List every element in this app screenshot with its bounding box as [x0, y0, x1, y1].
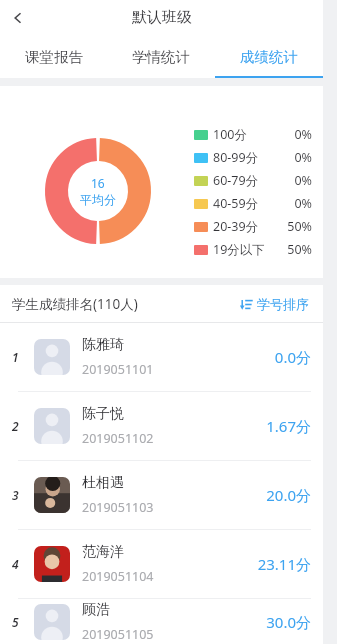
staticText: 4 — [12, 556, 19, 572]
staticText: 50% — [287, 241, 312, 258]
staticText: 学情统计 — [132, 48, 190, 66]
staticText: 16 — [91, 175, 105, 191]
staticText: 0.0分 — [274, 347, 311, 367]
staticText: 60-79分 — [213, 172, 259, 189]
staticText: 2019051104 — [82, 568, 154, 585]
staticText: 2019051105 — [82, 626, 154, 643]
staticText: 0% — [294, 172, 312, 189]
staticText: 成绩统计 — [240, 48, 298, 66]
button[interactable]: 4 — [0, 530, 323, 598]
button[interactable]: 成绩统计 — [215, 35, 323, 78]
staticText: 2 — [12, 418, 19, 434]
button[interactable]: 1 — [0, 323, 323, 391]
staticText: 30.0分 — [266, 612, 311, 632]
staticText: 19分以下 — [213, 241, 265, 258]
staticText: 默认班级 — [132, 8, 192, 27]
staticText: 20-39分 — [213, 218, 259, 235]
staticText: 0% — [294, 126, 312, 143]
staticText: 学生成绩排名(110人) — [12, 295, 138, 313]
staticText: 1 — [12, 349, 19, 365]
staticText: 0% — [294, 195, 312, 212]
staticText: 学号排序 — [257, 296, 309, 312]
staticText: 陈雅琦 — [82, 336, 124, 354]
staticText: 范海洋 — [82, 543, 124, 561]
staticText: 80-99分 — [213, 149, 259, 166]
button[interactable]: 学情统计 — [107, 35, 215, 78]
button[interactable]: 学号排序 — [238, 292, 311, 316]
staticText: 平均分 — [80, 192, 116, 207]
staticText: 40-59分 — [213, 195, 259, 212]
staticText: 课堂报告 — [25, 48, 83, 66]
button[interactable]: Back — [0, 0, 36, 35]
staticText: 2019051101 — [82, 361, 154, 378]
staticText: 23.11分 — [257, 554, 311, 574]
staticText: 0% — [294, 149, 312, 166]
button[interactable]: 3 — [0, 461, 323, 529]
staticText: 陈子悦 — [82, 405, 124, 423]
button[interactable]: 2 — [0, 392, 323, 460]
button[interactable]: 5 — [0, 599, 323, 644]
staticText: 1.67分 — [266, 416, 311, 436]
staticText: 2019051102 — [82, 430, 154, 447]
button[interactable]: 课堂报告 — [0, 35, 107, 78]
staticText: 100分 — [213, 126, 247, 143]
staticText: 20.0分 — [266, 485, 311, 505]
staticText: 50% — [287, 218, 312, 235]
staticText: 3 — [12, 487, 19, 503]
staticText: 顾浩 — [82, 601, 110, 619]
staticText: 杜相遇 — [82, 474, 124, 492]
staticText: 2019051103 — [82, 499, 154, 516]
staticText: 5 — [12, 614, 19, 630]
